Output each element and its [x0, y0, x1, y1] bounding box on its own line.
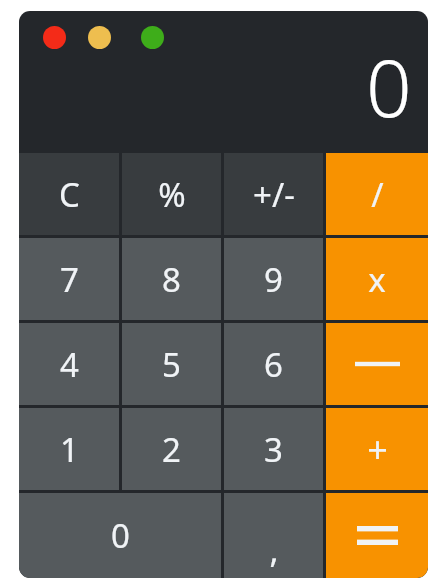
button[interactable]: 9: [224, 238, 323, 320]
button[interactable]: +/-: [224, 153, 323, 235]
staticText: 8: [162, 257, 181, 302]
button[interactable]: 2: [122, 408, 221, 490]
button[interactable]: Minus: [326, 323, 428, 405]
button[interactable]: 3: [224, 408, 323, 490]
button[interactable]: 5: [122, 323, 221, 405]
staticText: 0: [111, 513, 130, 558]
button[interactable]: Minimize: [88, 26, 111, 49]
button[interactable]: Maximize: [141, 26, 164, 49]
button[interactable]: Close: [43, 26, 66, 49]
staticText: 0: [366, 31, 412, 140]
staticText: %: [158, 172, 186, 217]
button[interactable]: 1: [19, 408, 119, 490]
button[interactable]: 0: [19, 493, 221, 578]
button[interactable]: /: [326, 153, 428, 235]
staticText: 3: [264, 427, 283, 472]
button[interactable]: C: [19, 153, 119, 235]
staticText: /: [371, 172, 384, 217]
button[interactable]: 8: [122, 238, 221, 320]
button[interactable]: 6: [224, 323, 323, 405]
staticText: 1: [60, 427, 79, 472]
staticText: x: [368, 257, 386, 302]
staticText: C: [59, 172, 80, 217]
button[interactable]: 4: [19, 323, 119, 405]
staticText: +: [367, 425, 388, 474]
staticText: ,: [269, 527, 279, 573]
button[interactable]: 7: [19, 238, 119, 320]
button[interactable]: x: [326, 238, 428, 320]
staticText: 7: [60, 257, 79, 302]
staticText: 6: [264, 342, 283, 387]
button[interactable]: Equals: [326, 493, 428, 578]
staticText: +/-: [253, 172, 295, 217]
button[interactable]: +: [326, 408, 428, 490]
staticText: 2: [162, 427, 181, 472]
staticText: 4: [60, 342, 79, 387]
button[interactable]: ,: [224, 493, 323, 578]
button[interactable]: %: [122, 153, 221, 235]
staticText: 9: [264, 257, 283, 302]
staticText: 5: [162, 342, 181, 387]
